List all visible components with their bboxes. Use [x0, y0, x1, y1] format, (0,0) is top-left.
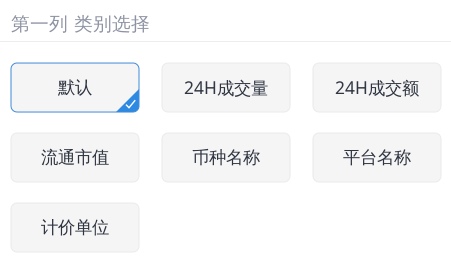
staticText: 24H成交量: [184, 76, 268, 99]
button[interactable]: 24H成交额: [313, 63, 441, 112]
button[interactable]: 24H成交量: [162, 63, 290, 112]
button[interactable]: 平台名称: [313, 133, 441, 182]
button[interactable]: 默认: [11, 63, 139, 112]
staticText: 24H成交额: [335, 76, 419, 99]
button[interactable]: 流通市值: [11, 133, 139, 182]
staticText: 默认: [58, 77, 92, 98]
staticText: 第一列 类别选择: [11, 12, 150, 35]
staticText: 平台名称: [343, 147, 411, 168]
button[interactable]: 计价单位: [11, 203, 139, 252]
staticText: 币种名称: [192, 147, 260, 168]
staticText: 计价单位: [41, 217, 109, 238]
staticText: 流通市值: [41, 147, 109, 168]
button[interactable]: 币种名称: [162, 133, 290, 182]
